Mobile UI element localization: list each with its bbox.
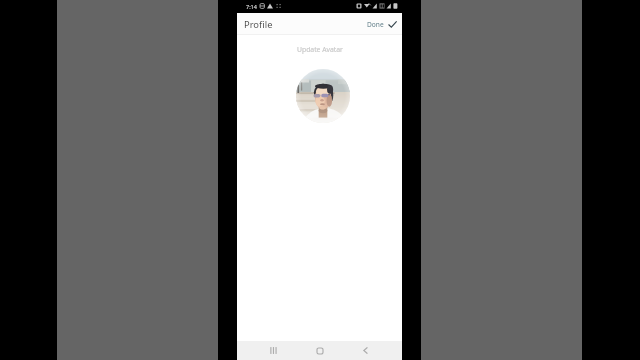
staticText: Profile [244,18,273,31]
button[interactable]: Done [367,20,397,29]
staticText: Update Avatar [297,45,343,54]
button[interactable]: Recents [264,341,283,360]
button[interactable]: Back [356,341,375,360]
button[interactable]: Update Avatar [296,69,350,123]
staticText: 7:14 [246,3,257,10]
staticText: Done [367,20,384,29]
button[interactable]: Home [310,341,329,360]
